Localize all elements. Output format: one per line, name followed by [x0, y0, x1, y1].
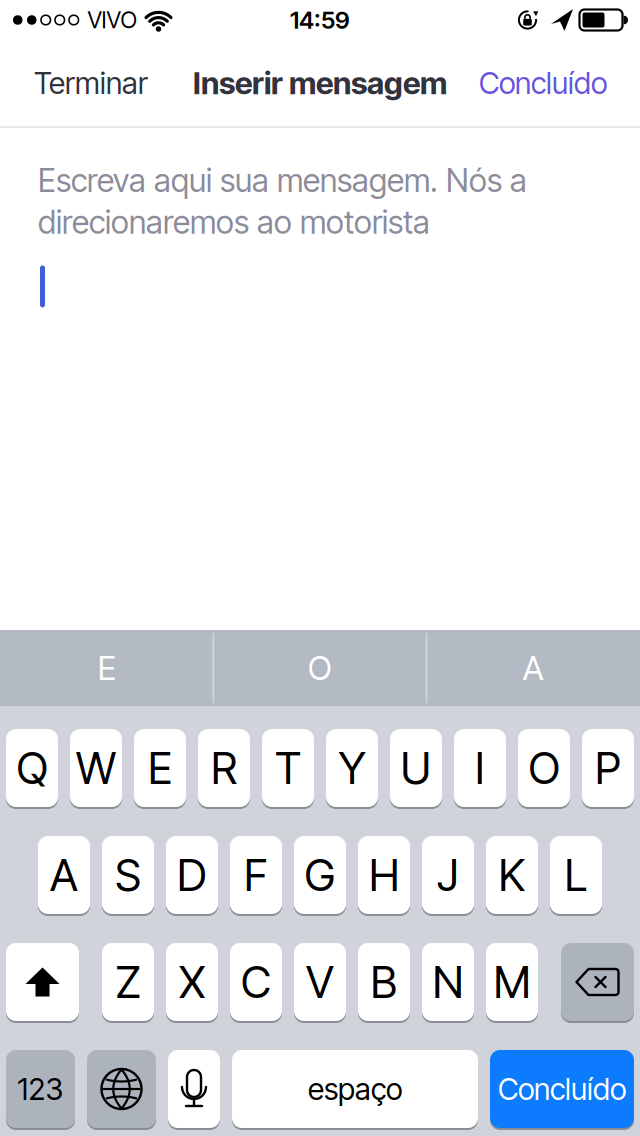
staticText: Concluído — [479, 65, 607, 101]
button[interactable]: U — [390, 728, 442, 808]
staticText: I — [475, 741, 485, 795]
button[interactable]: A — [38, 835, 90, 915]
button[interactable]: R — [198, 728, 250, 808]
button[interactable]: A — [427, 630, 640, 706]
button[interactable]: I — [454, 728, 506, 808]
staticText: VIVO — [87, 6, 136, 34]
staticText: G — [304, 848, 335, 902]
staticText: Inserir mensagem — [193, 64, 447, 102]
button[interactable]: J — [422, 835, 474, 915]
staticText: O — [308, 648, 332, 688]
button[interactable]: Next keyboard — [87, 1049, 156, 1129]
button[interactable]: P — [582, 728, 634, 808]
button[interactable]: E — [134, 728, 186, 808]
button[interactable]: Numbers — [6, 1049, 75, 1129]
staticText: direcionaremos ao motorista — [38, 203, 430, 241]
staticText: E — [98, 648, 116, 688]
button[interactable]: espaço — [232, 1049, 478, 1129]
staticText: L — [564, 848, 587, 902]
button[interactable]: F — [230, 835, 282, 915]
button[interactable]: Dictation — [168, 1049, 220, 1129]
staticText: Escreva aqui sua mensagem. Nós a — [38, 161, 527, 200]
staticText: A — [523, 648, 544, 688]
button[interactable]: Delete — [561, 942, 634, 1022]
staticText: espaço — [308, 1071, 402, 1107]
staticText: Terminar — [34, 65, 148, 101]
button[interactable]: G — [294, 835, 346, 915]
button[interactable]: Q — [6, 728, 58, 808]
staticText: P — [595, 741, 621, 795]
button[interactable]: O — [213, 630, 427, 706]
button[interactable]: B — [358, 942, 410, 1022]
button[interactable]: H — [358, 835, 410, 915]
staticText: K — [498, 848, 525, 902]
button[interactable]: Z — [102, 942, 154, 1022]
button[interactable]: X — [166, 942, 218, 1022]
button[interactable]: Concluído — [479, 65, 640, 101]
button[interactable]: O — [518, 728, 570, 808]
button[interactable]: T — [262, 728, 314, 808]
staticText: 14:59 — [290, 5, 350, 34]
button[interactable]: E — [0, 630, 213, 706]
staticText: J — [437, 848, 459, 902]
staticText: U — [400, 741, 431, 795]
staticText: A — [50, 848, 78, 902]
button[interactable]: N — [422, 942, 474, 1022]
button[interactable]: M — [486, 942, 538, 1022]
button[interactable]: Concluído — [490, 1049, 634, 1129]
staticText: M — [493, 955, 530, 1009]
button[interactable]: D — [166, 835, 218, 915]
button[interactable]: C — [230, 942, 282, 1022]
staticText: O — [528, 741, 559, 795]
staticText: V — [306, 955, 334, 1009]
staticText: H — [369, 848, 399, 902]
staticText: B — [370, 955, 397, 1009]
button[interactable]: Shift — [6, 942, 79, 1022]
staticText: Q — [16, 741, 47, 795]
staticText: C — [241, 955, 271, 1009]
staticText: W — [76, 741, 116, 795]
button[interactable]: W — [70, 728, 122, 808]
button[interactable]: Y — [326, 728, 378, 808]
button[interactable]: K — [486, 835, 538, 915]
staticText: 123 — [17, 1071, 63, 1107]
staticText: S — [115, 848, 141, 902]
button[interactable]: V — [294, 942, 346, 1022]
staticText: Y — [338, 741, 365, 795]
staticText: T — [275, 741, 301, 795]
button[interactable]: S — [102, 835, 154, 915]
staticText: N — [432, 955, 463, 1009]
staticText: D — [177, 848, 207, 902]
staticText: E — [148, 741, 172, 795]
staticText: X — [179, 955, 205, 1009]
staticText: Concluído — [498, 1071, 626, 1107]
staticText: R — [211, 741, 237, 795]
staticText: F — [244, 848, 268, 902]
staticText: Z — [115, 955, 140, 1009]
button[interactable]: Terminar — [0, 65, 148, 101]
button[interactable]: L — [550, 835, 602, 915]
